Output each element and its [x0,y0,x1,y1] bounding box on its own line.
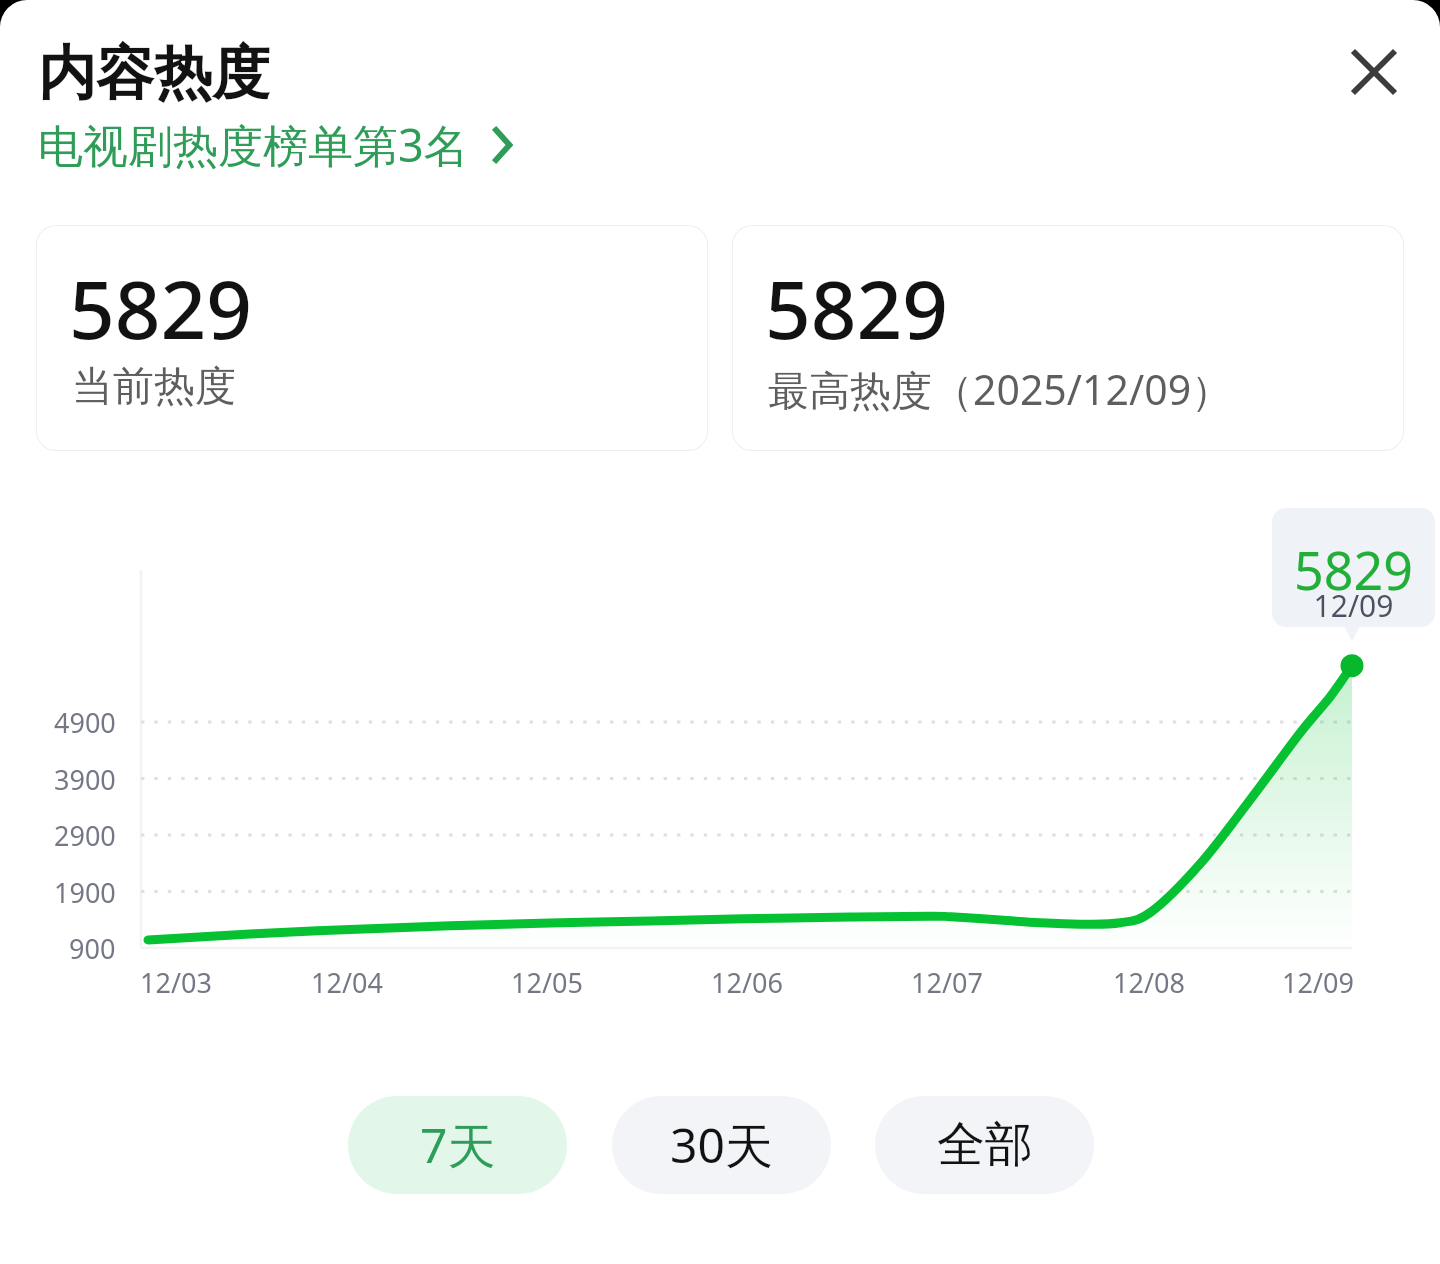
staticText: 12/09 [1282,964,1354,1001]
staticText: 2900 [54,817,116,854]
staticText: 12/05 [511,964,583,1001]
staticText: 最高热度（2025/12/09） [768,361,1233,417]
button[interactable]: Close [1338,36,1410,108]
staticText: 当前热度 [72,361,236,413]
staticText: 900 [69,930,116,967]
staticText: 1900 [54,874,116,911]
staticText: 5829 [765,253,949,362]
button[interactable]: 5829 [732,225,1404,451]
button[interactable]: 7天 [348,1096,567,1194]
button[interactable]: 30天 [612,1096,831,1194]
button[interactable]: 电视剧热度榜单第3名 [38,114,513,175]
button[interactable]: 全部 [875,1096,1094,1194]
button[interactable]: 5829 [36,225,708,451]
staticText: 5829 [69,253,253,362]
staticText: 12/08 [1113,964,1185,1001]
staticText: 12/07 [911,964,983,1001]
staticText: 30天 [670,1112,773,1178]
staticText: 12/03 [140,964,212,1001]
staticText: 12/09 [1272,585,1435,626]
staticText: 7天 [420,1112,496,1178]
staticText: 全部 [937,1115,1033,1175]
staticText: 3900 [54,761,116,798]
staticText: 12/04 [311,964,383,1001]
staticText: 5829 [1272,534,1435,605]
staticText: 内容热度 [38,37,270,110]
staticText: 4900 [54,704,116,741]
staticText: 12/06 [711,964,783,1001]
staticText: 电视剧热度榜单第3名 [38,114,469,175]
